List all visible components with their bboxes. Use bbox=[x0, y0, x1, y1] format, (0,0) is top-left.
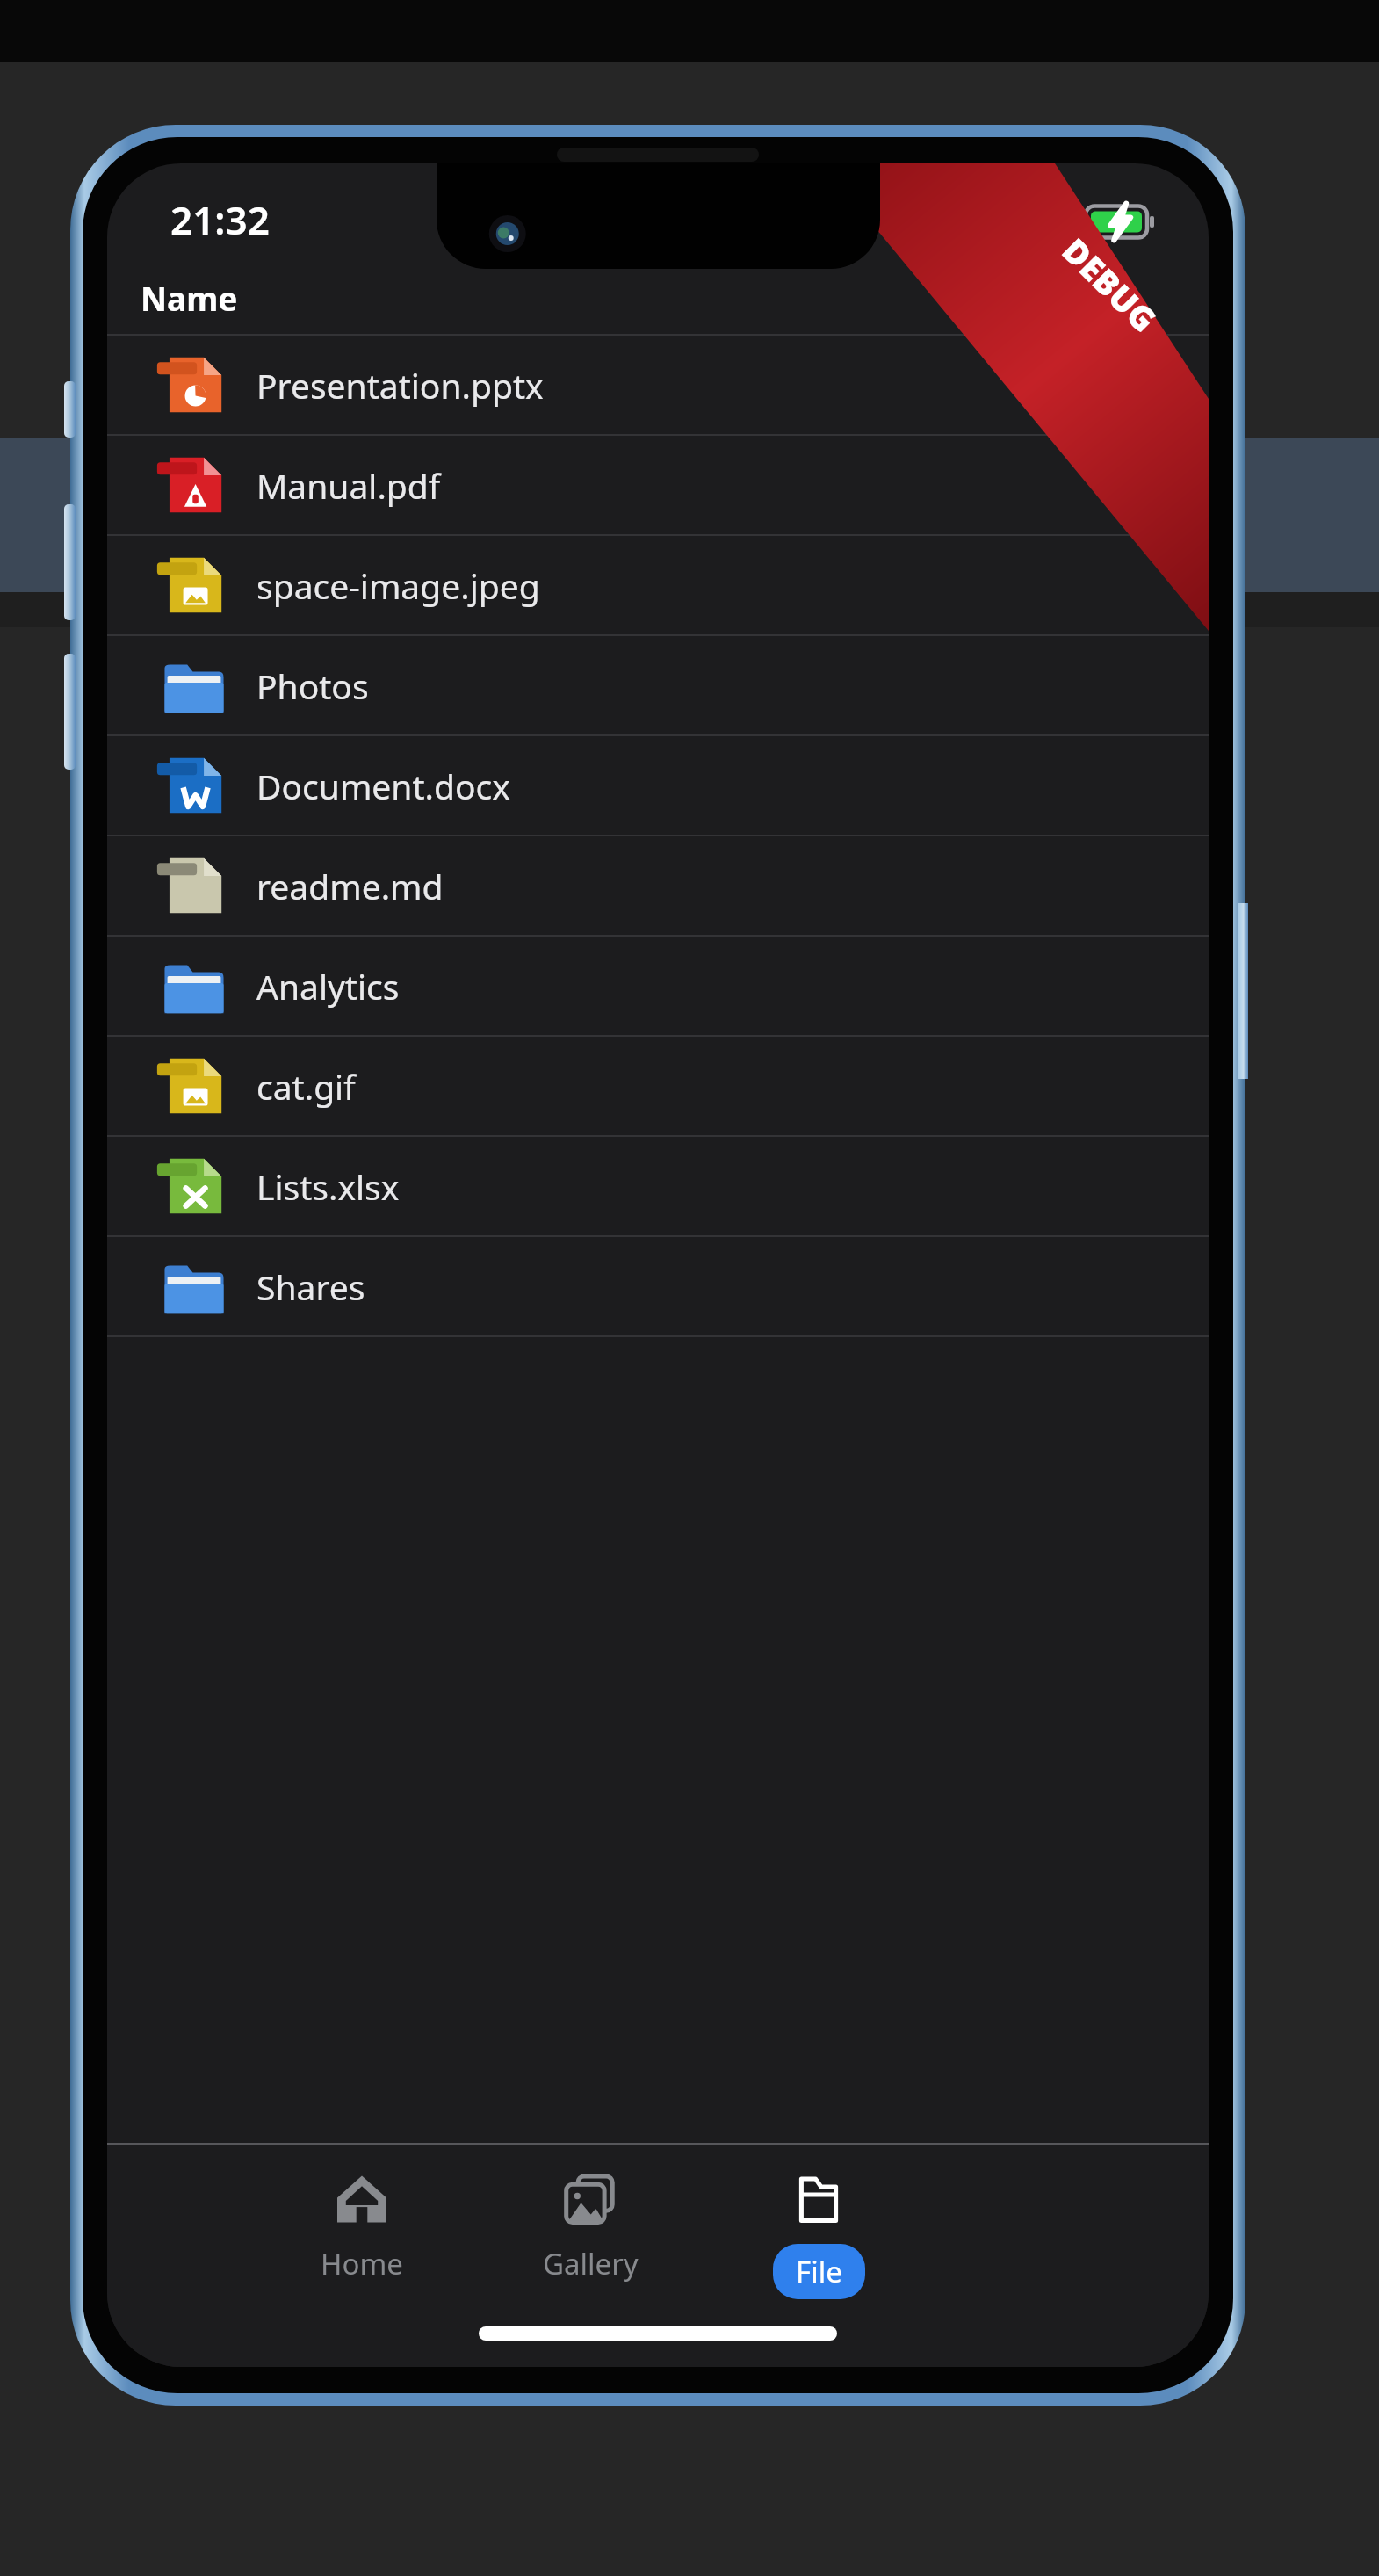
staticText: Name bbox=[141, 276, 238, 320]
staticText: Lists.xlsx bbox=[256, 1163, 400, 1210]
staticText: cat.gif bbox=[256, 1063, 356, 1110]
staticText: Gallery bbox=[543, 2244, 639, 2283]
staticText: 21:32 bbox=[170, 193, 270, 246]
staticText: readme.md bbox=[256, 863, 444, 909]
button[interactable]: Document.docx bbox=[107, 736, 1209, 835]
staticText: Document.docx bbox=[256, 763, 510, 809]
button[interactable]: Analytics bbox=[107, 937, 1209, 1035]
button[interactable]: Presentation.pptx bbox=[107, 336, 1209, 434]
button[interactable]: File bbox=[748, 2168, 889, 2299]
staticText: Photos bbox=[256, 662, 369, 709]
button[interactable]: space-image.jpeg bbox=[107, 536, 1209, 634]
staticText: Shares bbox=[256, 1263, 365, 1310]
staticText: Home bbox=[321, 2244, 403, 2283]
staticText: space-image.jpeg bbox=[256, 562, 540, 609]
staticText: Analytics bbox=[256, 963, 400, 1009]
button[interactable]: readme.md bbox=[107, 836, 1209, 935]
staticText: Presentation.pptx bbox=[256, 362, 544, 409]
button[interactable]: Photos bbox=[107, 636, 1209, 734]
button[interactable]: Manual.pdf bbox=[107, 436, 1209, 534]
button[interactable]: Lists.xlsx bbox=[107, 1137, 1209, 1235]
button[interactable]: Shares bbox=[107, 1237, 1209, 1335]
staticText: File bbox=[796, 2252, 842, 2291]
staticText: Manual.pdf bbox=[256, 462, 441, 509]
button[interactable]: cat.gif bbox=[107, 1037, 1209, 1135]
button[interactable]: Gallery bbox=[520, 2168, 661, 2283]
staticText: DEBUG bbox=[1053, 227, 1167, 342]
button[interactable]: Home bbox=[292, 2168, 432, 2283]
